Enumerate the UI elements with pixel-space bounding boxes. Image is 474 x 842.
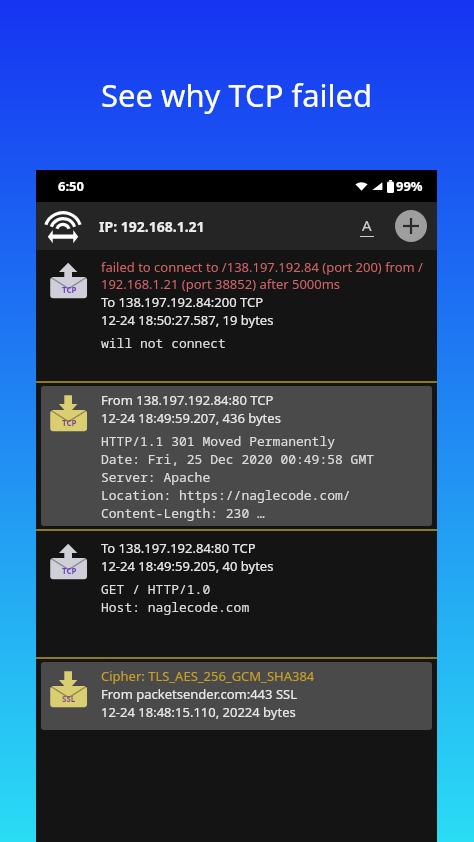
staticText: See why TCP failed (101, 74, 373, 116)
staticText: failed to connect to /138.197.192.84 (po… (101, 258, 426, 293)
button[interactable]: Add (395, 210, 427, 242)
button[interactable]: TCP (36, 381, 437, 529)
button[interactable]: Packet Sender (41, 204, 85, 248)
staticText: Server: Apache (101, 468, 211, 486)
staticText: TCP (62, 417, 77, 428)
staticText: GET / HTTP/1.0 (101, 580, 211, 598)
staticText: From 138.197.192.84:80 TCP (101, 391, 274, 409)
button[interactable]: SSL (36, 657, 437, 733)
staticText: 12-24 18:49:59.205, 40 bytes (101, 557, 274, 575)
staticText: From packetsender.com:443 SSL (101, 685, 297, 703)
button[interactable]: TCP (36, 529, 437, 657)
staticText: 12-24 18:48:15.110, 20224 bytes (101, 703, 296, 721)
staticText: will not connect (101, 334, 226, 352)
button[interactable]: TCP (36, 250, 437, 381)
staticText: 99% (396, 177, 423, 195)
staticText: Host: naglecode.com (101, 598, 250, 616)
staticText: 12-24 18:49:59.207, 436 bytes (101, 409, 281, 427)
staticText: TCP (62, 565, 77, 576)
staticText: To 138.197.192.84:200 TCP (101, 293, 264, 311)
staticText: 12-24 18:50:27.587, 19 bytes (101, 311, 274, 329)
staticText: A (362, 215, 372, 235)
staticText: TCP (62, 284, 77, 295)
staticText: SSL (62, 693, 76, 704)
staticText: Content-Length: 230 … (101, 504, 265, 522)
button[interactable]: Text format (347, 206, 387, 246)
staticText: 6:50 (58, 177, 84, 195)
staticText: Date: Fri, 25 Dec 2020 00:49:58 GMT (101, 450, 375, 468)
staticText: Cipher: TLS_AES_256_GCM_SHA384 (101, 667, 315, 685)
staticText: Location: https://naglecode.com/ (101, 486, 351, 504)
staticText: IP: 192.168.1.21 (99, 217, 205, 236)
staticText: HTTP/1.1 301 Moved Permanently (101, 432, 336, 450)
staticText: To 138.197.192.84:80 TCP (101, 539, 256, 557)
